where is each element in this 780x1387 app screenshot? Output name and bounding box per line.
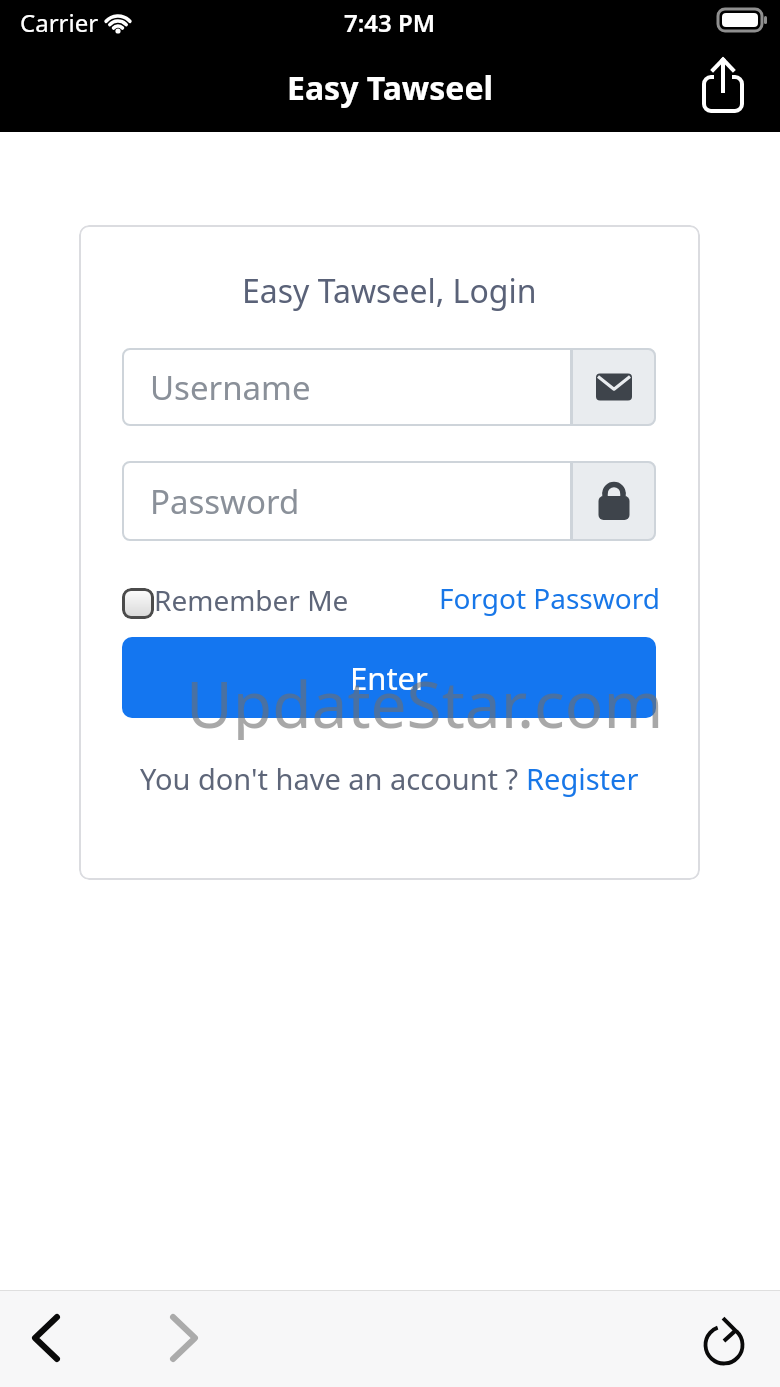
staticText: Carrier [20,6,99,38]
button[interactable]: Username [122,348,656,426]
button[interactable]: Remember Me [154,581,364,617]
staticText: Easy Tawseel, Login [242,269,537,313]
button[interactable]: Register [526,759,639,798]
button[interactable] [690,1304,756,1372]
button[interactable] [14,1300,78,1376]
button[interactable]: Password [122,461,656,541]
staticText: Enter [350,657,428,699]
button[interactable] [122,588,154,619]
button[interactable] [692,50,754,120]
staticText: UpdateStar.com [186,660,664,740]
staticText: 7:43 PM [344,6,436,38]
staticText: Remember Me [154,581,349,617]
button[interactable]: Enter [122,637,656,718]
staticText: Easy Tawseel [287,66,494,110]
staticText: Username [150,365,311,410]
button[interactable]: Forgot Password [420,579,660,617]
staticText: You don't have an account ? [140,759,526,798]
button[interactable] [152,1300,216,1376]
staticText: Register [526,759,639,798]
staticText: Password [150,479,300,524]
staticText: Forgot Password [439,579,660,617]
